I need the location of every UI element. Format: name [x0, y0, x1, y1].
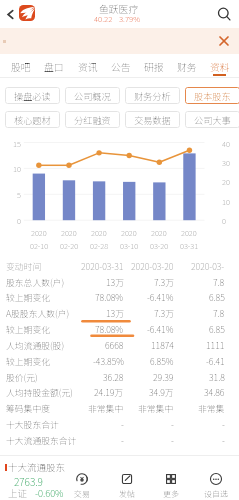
staticText: 筹码集中度 [6, 402, 50, 415]
staticText: 上证 [8, 486, 28, 500]
staticText: 人均持股金额(元) [6, 386, 73, 399]
staticText: 2020 [121, 227, 137, 238]
staticText: 24.19万 [94, 386, 124, 399]
staticText: 20 [222, 176, 230, 187]
staticText: - [222, 418, 225, 431]
staticText: 公告 [111, 60, 131, 74]
staticText: - [171, 418, 174, 431]
button[interactable]: 分红融资 [65, 111, 120, 128]
staticText: 7.8 [213, 307, 225, 320]
staticText: 7.8 [213, 276, 225, 289]
staticText: 7.3万 [154, 276, 174, 289]
button[interactable]: 核心题材 [5, 111, 60, 128]
staticText: 更多 [163, 488, 179, 500]
button[interactable]: 公司大事 [185, 111, 239, 128]
button[interactable]: 操盘必读 [5, 87, 60, 104]
staticText: 交易 [74, 488, 90, 500]
staticText: 40 [222, 138, 230, 149]
staticText: 核心题材 [14, 113, 51, 126]
staticText: - [121, 434, 124, 447]
staticText: 1111 [206, 339, 225, 352]
button[interactable]: 股本股东 [185, 87, 239, 104]
staticText: 发帖 [119, 488, 135, 500]
staticText: 13万 [106, 276, 124, 289]
button[interactable]: Stock app logo [19, 5, 35, 21]
staticText: 0 [17, 215, 21, 226]
staticText: 6668 [105, 339, 124, 352]
staticText: 公司大事 [194, 113, 231, 126]
button[interactable]: 盘口 [37, 54, 70, 78]
staticText: -0.60% [35, 486, 64, 500]
staticText: 5 [17, 189, 21, 200]
staticText: 03-20 [150, 240, 169, 251]
button[interactable]: 财务分析 [125, 87, 180, 104]
staticText: 10 [13, 163, 21, 174]
staticText: 10 [222, 196, 230, 207]
staticText: A股股东人数(户) [6, 307, 70, 320]
staticText: 02-10 [30, 240, 49, 251]
staticText: 2020-03-31 [81, 260, 124, 273]
staticText: - [222, 434, 225, 447]
staticText: 03-10 [120, 240, 139, 251]
button[interactable]: 设自选 [194, 455, 238, 500]
staticText: 34.86 [204, 386, 225, 399]
staticText: 31.8 [209, 371, 225, 384]
staticText: 02-20 [60, 240, 79, 251]
button[interactable]: 公司概况 [65, 87, 120, 104]
staticText: 资料 [210, 60, 230, 74]
button[interactable]: 资讯 [71, 54, 104, 78]
staticText: 股价(元) [6, 371, 38, 384]
staticText: 股东总人数(户) [6, 276, 65, 289]
staticText: 2020-03- [191, 260, 225, 273]
staticText: 十大流通股东合计 [6, 434, 77, 447]
staticText: 0 [222, 215, 226, 226]
staticText: - [171, 434, 174, 447]
staticText: 2763.99 [14, 474, 45, 489]
button[interactable]: 十大流通股东 [0, 455, 72, 500]
staticText: - [121, 418, 124, 431]
button[interactable]: 发帖 [105, 455, 149, 500]
staticText: 2020 [61, 227, 77, 238]
staticText: 2020 [91, 227, 107, 238]
staticText: 财务分析 [134, 89, 171, 102]
button[interactable]: Close banner [216, 33, 232, 49]
staticText: 财务 [177, 60, 197, 74]
staticText: 2020-03-20 [131, 260, 174, 273]
button[interactable]: 股吧 [4, 54, 37, 78]
button[interactable]: 交易数据 [125, 111, 180, 128]
staticText: 6.85% [150, 355, 174, 368]
button[interactable]: 更多 [149, 455, 193, 500]
staticText: 13万 [106, 307, 124, 320]
staticText: 2020 [31, 227, 47, 238]
staticText: 资讯 [78, 60, 98, 74]
staticText: 2020 [151, 227, 167, 238]
button[interactable]: 研报 [137, 54, 170, 78]
button[interactable]: Back [2, 6, 18, 22]
staticText: 非常集中 [138, 402, 174, 415]
button[interactable]: 交易 [60, 455, 104, 500]
button[interactable]: 资料 [203, 54, 236, 78]
staticText: 分红融资 [74, 113, 111, 126]
staticText: 6.85 [209, 291, 225, 304]
staticText: 鱼跃医疗 [99, 2, 139, 16]
staticText: 40.22 [94, 13, 113, 24]
staticText: 03-31 [180, 240, 199, 251]
staticText: 十大股东合计 [6, 418, 59, 431]
button[interactable]: Search [214, 4, 234, 24]
staticText: 较上期变化 [6, 291, 50, 304]
staticText: -6.41% [147, 291, 174, 304]
staticText: 非常集中 [88, 402, 124, 415]
staticText: 3.79% [119, 13, 141, 24]
staticText: 操盘必读 [14, 89, 51, 102]
staticText: -43.85% [93, 355, 124, 368]
staticText: 15 [13, 138, 21, 149]
button[interactable]: 财务 [170, 54, 203, 78]
staticText: 2020 [181, 227, 197, 238]
staticText: 非常集 [198, 402, 225, 415]
staticText: -6.41 [206, 355, 225, 368]
staticText: 变动时间 [6, 260, 42, 273]
button[interactable]: 公告 [104, 54, 137, 78]
staticText: 11874 [151, 339, 174, 352]
staticText: 6.85 [209, 323, 225, 336]
staticText: -6.41% [147, 323, 174, 336]
